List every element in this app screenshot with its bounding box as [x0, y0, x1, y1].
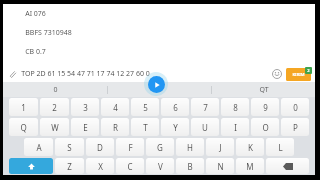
- button[interactable]: I: [221, 118, 249, 136]
- button[interactable]: 6: [161, 98, 189, 116]
- button[interactable]: R: [101, 118, 129, 136]
- button[interactable]: 4: [101, 98, 129, 116]
- staticText: C: [157, 85, 162, 95]
- button[interactable]: 7: [191, 98, 219, 116]
- button[interactable]: Z: [55, 158, 84, 174]
- staticText: 9: [263, 102, 268, 113]
- staticText: C: [127, 161, 133, 172]
- staticText: P: [293, 122, 298, 133]
- button[interactable]: J: [206, 138, 234, 156]
- button[interactable]: D: [86, 138, 114, 156]
- staticText: F: [128, 142, 133, 153]
- staticText: I: [234, 122, 237, 133]
- button[interactable]: B: [176, 158, 204, 174]
- button[interactable]: K: [236, 138, 264, 156]
- staticText: Q: [20, 122, 27, 133]
- staticText: TOP 2D 61 15 54 47 71 17 74 12 27 60 0: [21, 69, 150, 79]
- staticText: 8: [233, 102, 238, 113]
- staticText: U: [202, 122, 208, 133]
- staticText: CB 0.7: [25, 47, 46, 57]
- staticText: 4: [113, 102, 118, 113]
- staticText: B: [187, 161, 193, 172]
- staticText: 2: [52, 102, 57, 113]
- staticText: A: [36, 142, 42, 153]
- button[interactable]: Attach: [6, 68, 19, 81]
- button[interactable]: W: [40, 118, 69, 136]
- button[interactable]: 9: [251, 98, 279, 116]
- staticText: G: [157, 142, 163, 153]
- button[interactable]: U: [191, 118, 219, 136]
- button[interactable]: A: [24, 138, 53, 156]
- button[interactable]: M: [236, 158, 264, 174]
- staticText: T: [143, 122, 148, 133]
- button[interactable]: C: [116, 158, 144, 174]
- button[interactable]: Emoji: [270, 67, 284, 81]
- staticText: 1: [21, 102, 26, 113]
- staticText: E: [83, 122, 88, 133]
- button[interactable]: Q: [9, 118, 38, 136]
- staticText: H: [187, 142, 193, 153]
- staticText: R: [113, 122, 118, 133]
- button[interactable]: S: [55, 138, 84, 156]
- button[interactable]: V: [146, 158, 174, 174]
- staticText: V: [158, 161, 163, 172]
- button[interactable]: Play: [144, 72, 168, 96]
- button[interactable]: Shift: [9, 158, 53, 174]
- staticText: S: [67, 142, 72, 153]
- button[interactable]: L: [266, 138, 294, 156]
- staticText: L: [278, 142, 283, 153]
- staticText: 5: [143, 102, 148, 113]
- button[interactable]: Backspace: [266, 158, 309, 174]
- staticText: Y: [173, 122, 178, 133]
- staticText: M: [246, 161, 254, 172]
- button[interactable]: 1: [9, 98, 38, 116]
- button[interactable]: H: [176, 138, 204, 156]
- button[interactable]: F: [116, 138, 144, 156]
- staticText: AI 076: [25, 9, 46, 19]
- button[interactable]: Y: [161, 118, 189, 136]
- staticText: QT: [259, 85, 269, 95]
- staticText: 2: [307, 68, 310, 73]
- staticText: KIRIM: [292, 72, 305, 77]
- button[interactable]: O: [251, 118, 279, 136]
- staticText: X: [98, 161, 103, 172]
- button[interactable]: T: [131, 118, 159, 136]
- button[interactable]: 8: [221, 98, 249, 116]
- staticText: J: [219, 142, 222, 153]
- staticText: BBFS 7310948: [25, 28, 72, 38]
- button[interactable]: Send: [286, 68, 311, 81]
- button[interactable]: 0: [281, 98, 309, 116]
- staticText: W: [51, 122, 59, 133]
- button[interactable]: 5: [131, 98, 159, 116]
- staticText: 0: [293, 102, 298, 113]
- staticText: 6: [173, 102, 178, 113]
- button[interactable]: QT: [212, 82, 315, 97]
- staticText: Z: [67, 161, 72, 172]
- button[interactable]: X: [86, 158, 114, 174]
- staticText: K: [248, 142, 253, 153]
- staticText: N: [217, 161, 224, 172]
- button[interactable]: 2: [40, 98, 69, 116]
- button[interactable]: G: [146, 138, 174, 156]
- staticText: 3: [83, 102, 88, 113]
- button[interactable]: E: [71, 118, 99, 136]
- button[interactable]: P: [281, 118, 309, 136]
- staticText: 7: [203, 102, 208, 113]
- button[interactable]: 0: [3, 82, 107, 97]
- button[interactable]: N: [206, 158, 234, 174]
- button[interactable]: C: [108, 82, 211, 97]
- staticText: D: [97, 142, 103, 153]
- button[interactable]: 3: [71, 98, 99, 116]
- staticText: O: [262, 122, 269, 133]
- button[interactable]: TOP 2D 61 15 54 47 71 17 74 12 27 60 0: [21, 69, 270, 79]
- staticText: 0: [53, 85, 58, 95]
